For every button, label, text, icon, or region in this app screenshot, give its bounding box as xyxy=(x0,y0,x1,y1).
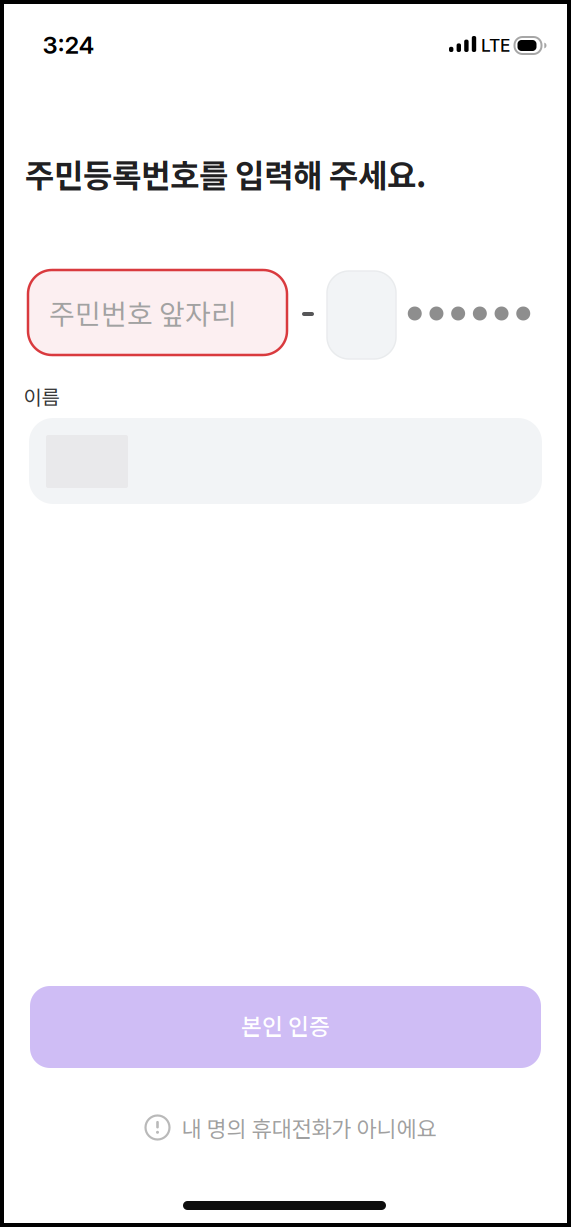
button[interactable]: 본인 인증 xyxy=(30,986,541,1068)
staticText: 본인 인증 xyxy=(241,1009,330,1041)
staticText: 주민등록번호를 입력해 주세요. xyxy=(25,150,426,197)
button[interactable]: 주민번호 앞자리 xyxy=(28,270,287,355)
button[interactable]: 이름 xyxy=(29,418,542,504)
button[interactable]: 주민번호 뒷자리 xyxy=(327,271,396,359)
staticText: 이름 xyxy=(23,381,59,410)
staticText: 3:24 xyxy=(42,30,94,59)
staticText: 내 명의 휴대전화가 아니에요 xyxy=(181,1112,436,1143)
staticText: 주민번호 앞자리 xyxy=(49,292,237,333)
staticText: LTE xyxy=(481,35,510,56)
button[interactable]: 내 명의 휴대전화가 아니에요 xyxy=(145,1112,436,1143)
